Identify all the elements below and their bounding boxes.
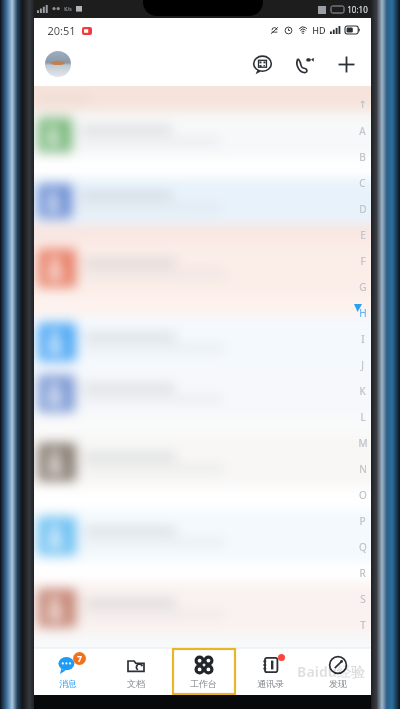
staticText: 发现 [329, 678, 347, 689]
staticText: Q [359, 540, 367, 554]
staticText: ↑ [358, 99, 367, 111]
button[interactable]: I [354, 326, 371, 352]
staticText: Baidu经验 [297, 662, 365, 681]
staticText: H [359, 306, 367, 320]
button[interactable] [34, 436, 371, 488]
staticText: 消息 [59, 678, 77, 689]
staticText: D [359, 202, 367, 216]
button[interactable] [34, 582, 371, 634]
button[interactable]: O [354, 482, 371, 508]
button[interactable]: H [354, 300, 371, 326]
button[interactable]: J [354, 352, 371, 378]
button[interactable] [34, 294, 371, 316]
button[interactable]: 7 [34, 648, 102, 695]
button[interactable]: ↑ [354, 92, 371, 118]
button[interactable]: B [354, 144, 371, 170]
staticText: I [361, 332, 365, 346]
button[interactable]: 文档 [102, 648, 170, 695]
staticText: HD [312, 24, 326, 36]
button[interactable]: 发现 [304, 648, 371, 695]
button[interactable] [34, 510, 371, 562]
button[interactable] [34, 178, 371, 224]
staticText: K [359, 384, 366, 398]
staticText: O [359, 488, 367, 502]
staticText: 工作台 [190, 678, 217, 689]
staticText: N [359, 462, 367, 476]
staticText: P [359, 514, 366, 528]
button[interactable] [34, 488, 371, 510]
button[interactable]: N [354, 456, 371, 482]
button[interactable]: E [354, 222, 371, 248]
staticText: E [360, 228, 366, 242]
button[interactable] [34, 158, 371, 178]
staticText: 通讯录 [257, 678, 284, 689]
button[interactable]: Q [354, 534, 371, 560]
button[interactable]: T [354, 612, 371, 638]
button[interactable] [34, 316, 371, 368]
button[interactable] [34, 242, 371, 294]
button[interactable]: P [354, 508, 371, 534]
staticText: A [359, 124, 366, 138]
staticText: 20:51 [47, 23, 76, 38]
button[interactable]: M [354, 430, 371, 456]
button[interactable]: F [354, 248, 371, 274]
button[interactable] [34, 112, 371, 158]
staticText: 10:10 [347, 4, 368, 15]
staticText: B [359, 150, 366, 164]
button[interactable]: G [354, 274, 371, 300]
button[interactable]: C [354, 170, 371, 196]
staticText: T [360, 618, 366, 632]
button[interactable]: Scan QR code [245, 47, 279, 81]
button[interactable] [34, 224, 371, 242]
button[interactable]: Video call [287, 47, 321, 81]
button[interactable]: L [354, 404, 371, 430]
staticText: S [360, 592, 366, 606]
button[interactable] [34, 562, 371, 582]
staticText: 文档 [127, 678, 145, 689]
staticText: G [359, 280, 367, 294]
staticText: J [361, 358, 364, 372]
staticText: C [359, 176, 366, 190]
button[interactable]: K [354, 378, 371, 404]
staticText: K/s [64, 6, 72, 13]
staticText: M [358, 436, 368, 450]
button[interactable]: R [354, 560, 371, 586]
staticText: 7 [77, 653, 82, 664]
button[interactable]: A [354, 118, 371, 144]
staticText: R [359, 566, 366, 580]
staticText: L [360, 410, 366, 424]
button[interactable] [34, 368, 371, 418]
button[interactable]: D [354, 196, 371, 222]
button[interactable]: Add [329, 47, 363, 81]
staticText: F [360, 254, 366, 268]
button[interactable]: S [354, 586, 371, 612]
button[interactable] [34, 86, 371, 112]
button[interactable]: Profile [39, 45, 77, 83]
button[interactable]: 工作台 [170, 648, 237, 695]
button[interactable] [34, 634, 371, 648]
button[interactable]: 通讯录 [237, 648, 304, 695]
